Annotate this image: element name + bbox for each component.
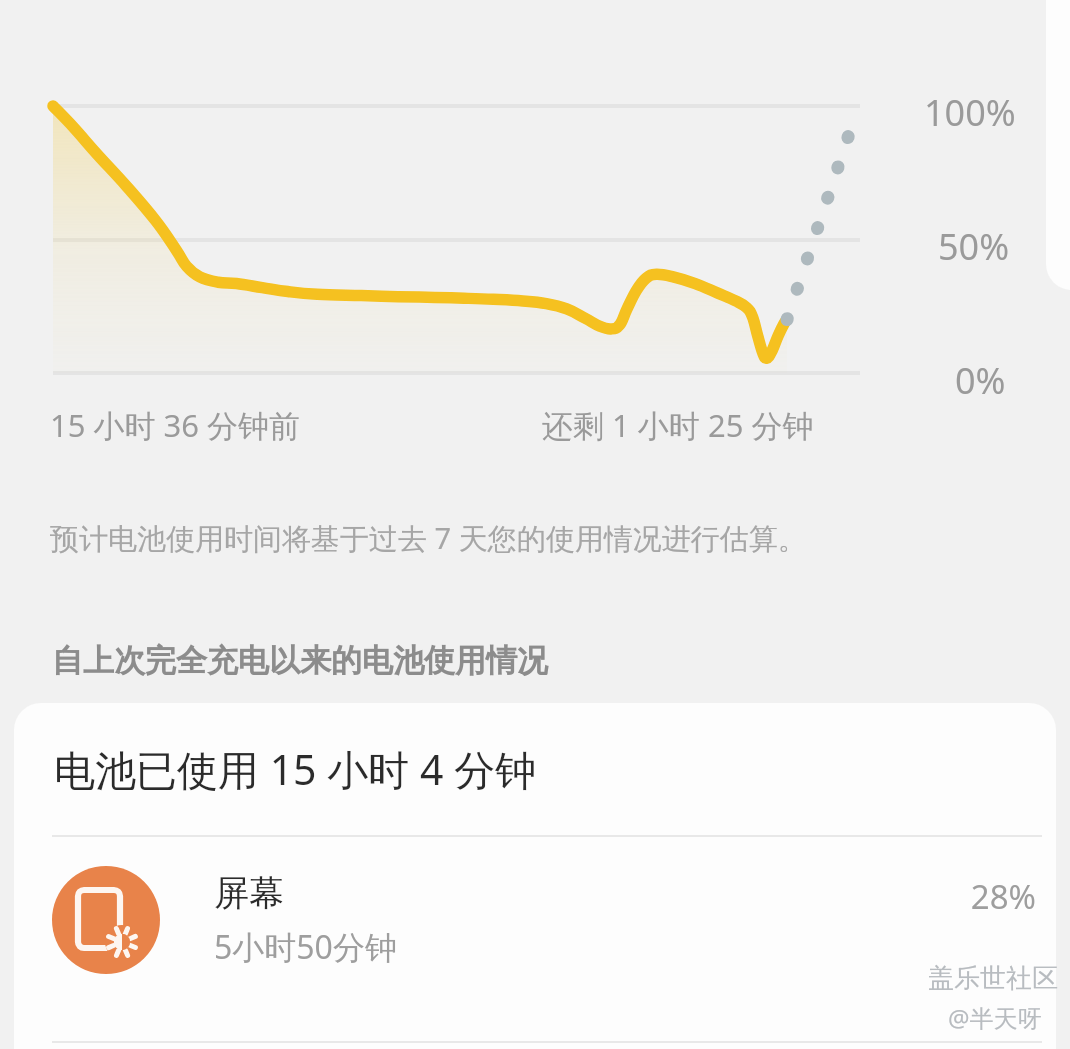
staticText: 盖乐世社区 [928,962,1058,995]
staticText: 15 小时 36 分钟前 [50,404,301,446]
staticText: 50% [938,222,1010,271]
staticText: 28% [970,874,1036,919]
staticText: 还剩 1 小时 25 分钟 [542,404,814,446]
staticText: 屏幕 [214,871,284,915]
button[interactable]: 电池已使用 15 小时 4 分钟 [14,703,1056,835]
staticText: 0% [955,356,1006,405]
other: 屏幕 [52,866,160,974]
staticText: 5小时50分钟 [214,925,397,969]
staticText: 自上次完全充电以来的电池使用情况 [52,641,548,680]
staticText: @半天呀 [948,1001,1042,1034]
button[interactable]: 屏幕 [14,837,1056,1003]
staticText: 预计电池使用时间将基于过去 7 天您的使用情况进行估算。 [50,518,807,558]
staticText: 电池已使用 15 小时 4 分钟 [54,741,536,797]
staticText: 100% [924,88,1016,137]
